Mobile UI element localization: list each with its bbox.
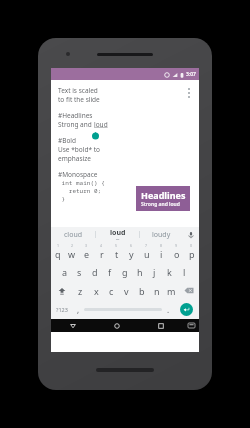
staticText: Strong and loud — [141, 201, 180, 208]
staticText: o — [174, 248, 180, 260]
staticText: v — [124, 285, 129, 297]
staticText: Text is scaled — [58, 86, 98, 95]
button[interactable]: Shift — [51, 281, 72, 300]
staticText: h — [137, 266, 143, 278]
button[interactable]: h — [132, 262, 147, 281]
button[interactable]: f — [102, 262, 117, 281]
staticText: j — [153, 266, 156, 278]
button[interactable]: 5 — [109, 242, 124, 262]
staticText: Use *bold* to — [58, 145, 100, 154]
staticText: t — [115, 248, 119, 260]
staticText: Strong and — [58, 120, 94, 129]
staticText: z — [78, 285, 83, 297]
button[interactable]: a — [57, 262, 72, 281]
button[interactable]: 0 — [184, 242, 199, 262]
staticText: 2 — [71, 243, 74, 248]
staticText: 8 — [160, 243, 163, 248]
button[interactable]: Space — [84, 305, 162, 314]
button[interactable]: loud — [96, 227, 139, 242]
staticText: c — [109, 285, 114, 297]
button[interactable]: 2 — [65, 242, 79, 262]
staticText: emphasize — [58, 154, 91, 163]
button[interactable]: Headlines — [136, 186, 190, 211]
button[interactable]: b — [134, 281, 149, 300]
staticText: p — [189, 248, 195, 260]
button[interactable]: 4 — [94, 242, 109, 262]
staticText: l — [183, 266, 186, 278]
staticText: #Bold — [58, 136, 77, 145]
button[interactable]: x — [88, 281, 104, 300]
button[interactable]: Voice input — [183, 227, 199, 242]
button[interactable]: 1 — [51, 242, 65, 262]
staticText: , — [77, 304, 80, 315]
button[interactable]: 7 — [139, 242, 154, 262]
staticText: m — [167, 285, 176, 297]
staticText: #Headlines — [58, 111, 93, 120]
button[interactable]: m — [164, 281, 179, 300]
staticText: g — [122, 266, 128, 278]
staticText: int main() { — [58, 179, 105, 187]
button[interactable]: More options — [184, 86, 194, 100]
button[interactable]: g — [117, 262, 132, 281]
button[interactable]: , — [72, 300, 84, 319]
staticText: } — [58, 195, 66, 203]
staticText: 7 — [145, 243, 148, 248]
button[interactable]: Back — [51, 319, 95, 332]
button[interactable]: loudy — [140, 227, 183, 242]
staticText: y — [129, 248, 134, 260]
button[interactable]: 9 — [169, 242, 184, 262]
staticText: n — [154, 285, 160, 297]
button[interactable]: Switch keyboard — [183, 319, 199, 332]
staticText: s — [77, 266, 82, 278]
button[interactable]: Enter — [174, 300, 199, 319]
button[interactable]: z — [72, 281, 88, 300]
staticText: w — [68, 248, 76, 260]
button[interactable]: n — [149, 281, 164, 300]
staticText: k — [167, 266, 172, 278]
button[interactable]: v — [119, 281, 134, 300]
staticText: 5 — [115, 243, 118, 248]
button[interactable]: cloud — [51, 227, 95, 242]
staticText: ?123 — [56, 306, 68, 313]
button[interactable]: Backspace — [179, 281, 199, 300]
staticText: 3 — [85, 243, 88, 248]
staticText: #Monospace — [58, 170, 98, 179]
staticText: loud — [110, 228, 126, 238]
button[interactable]: l — [177, 262, 192, 281]
button[interactable]: Recents — [139, 319, 183, 332]
button[interactable]: 8 — [154, 242, 169, 262]
staticText: r — [100, 248, 104, 260]
staticText: 1 — [57, 243, 60, 248]
staticText: loudy — [152, 230, 171, 240]
staticText: a — [62, 266, 68, 278]
staticText: 4 — [100, 243, 103, 248]
staticText: loud — [94, 120, 108, 129]
staticText: 0 — [190, 243, 193, 248]
button[interactable]: Home — [95, 319, 139, 332]
staticText: . — [167, 304, 170, 315]
staticText: i — [160, 248, 163, 260]
staticText: 9 — [175, 243, 178, 248]
button[interactable]: j — [147, 262, 162, 281]
button[interactable]: d — [87, 262, 102, 281]
button[interactable]: k — [162, 262, 177, 281]
button[interactable]: c — [104, 281, 119, 300]
button[interactable]: ?123 — [51, 300, 72, 319]
button[interactable]: . — [162, 300, 174, 319]
staticText: b — [139, 285, 145, 297]
staticText: f — [108, 266, 112, 278]
staticText: x — [94, 285, 99, 297]
staticText: ••• — [116, 238, 120, 242]
staticText: q — [55, 248, 61, 260]
staticText: 3:07 — [186, 71, 196, 78]
staticText: d — [92, 266, 98, 278]
button[interactable]: s — [72, 262, 87, 281]
staticText: 6 — [130, 243, 133, 248]
button[interactable]: 3 — [79, 242, 94, 262]
staticText: u — [144, 248, 150, 260]
staticText: e — [84, 248, 90, 260]
staticText: to fit the slide — [58, 95, 100, 104]
button[interactable]: 6 — [124, 242, 139, 262]
staticText: return 0; — [58, 187, 102, 195]
staticText: Headlines — [141, 189, 186, 201]
